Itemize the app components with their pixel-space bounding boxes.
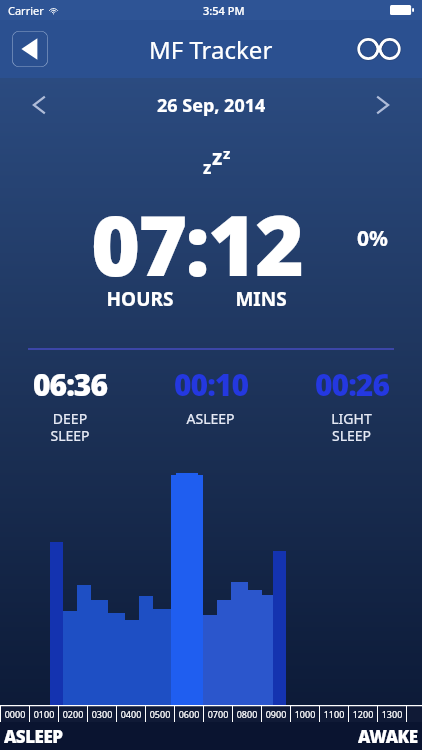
staticText: 06:36	[33, 364, 107, 405]
staticText: 1300	[378, 708, 406, 720]
button[interactable]: 06:36	[0, 364, 140, 445]
staticText: 0400	[117, 708, 145, 720]
staticText: z	[203, 156, 212, 179]
button[interactable]: Back	[12, 31, 48, 67]
staticText: 0%	[357, 224, 388, 253]
staticText: 0200	[59, 708, 87, 720]
button[interactable]: 00:10	[140, 364, 281, 428]
staticText: 00:26	[315, 364, 389, 405]
staticText: ASLEEP	[186, 409, 235, 428]
staticText: 07:12	[91, 186, 303, 300]
button[interactable]: Next day	[364, 87, 400, 123]
staticText: Carrier	[8, 3, 44, 18]
staticText: 00:10	[174, 364, 248, 405]
button[interactable]: Infinity	[350, 33, 408, 65]
staticText: 1200	[349, 708, 377, 720]
staticText: 0800	[233, 708, 261, 720]
staticText: 0600	[175, 708, 203, 720]
button[interactable]: Previous day	[22, 87, 58, 123]
staticText: z	[223, 143, 231, 163]
staticText: 0100	[30, 708, 58, 720]
staticText: 0500	[146, 708, 174, 720]
staticText: 1100	[320, 708, 348, 720]
staticText: 0300	[88, 708, 116, 720]
button[interactable]: 00:26	[281, 364, 422, 445]
button[interactable]: ASLEEP	[4, 725, 63, 748]
staticText: 0900	[262, 708, 290, 720]
staticText: MF Tracker	[149, 33, 273, 66]
staticText: 1000	[291, 708, 319, 720]
staticText: 0700	[204, 708, 232, 720]
button[interactable]: AWAKE	[358, 725, 418, 748]
staticText: 0000	[1, 708, 29, 720]
staticText: DEEP SLEEP	[50, 409, 90, 445]
staticText: z	[212, 143, 223, 172]
staticText: LIGHT SLEEP	[331, 409, 372, 445]
staticText: 3:54 PM	[203, 3, 245, 18]
staticText: HOURS	[98, 286, 182, 312]
staticText: 26 Sep, 2014	[157, 93, 266, 118]
staticText: MINS	[226, 286, 296, 312]
